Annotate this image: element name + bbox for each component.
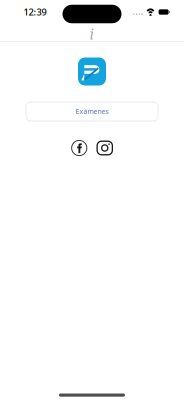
button[interactable]: Instagram — [97, 140, 113, 156]
button[interactable]: Exámenes — [26, 102, 158, 121]
staticText: 12:39 — [23, 6, 46, 18]
button[interactable]: Information — [0, 28, 184, 41]
staticText: Exámenes — [75, 107, 108, 116]
staticText: i — [89, 26, 94, 43]
button[interactable]: Facebook — [71, 140, 87, 156]
